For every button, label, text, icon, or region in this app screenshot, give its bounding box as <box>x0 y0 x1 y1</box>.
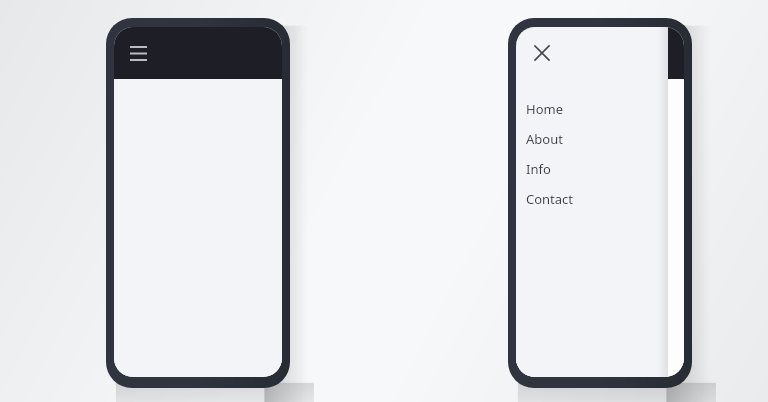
staticText: Home <box>526 100 563 118</box>
button[interactable]: Contact <box>516 184 668 214</box>
staticText: Contact <box>526 190 574 208</box>
button[interactable]: About <box>516 124 668 154</box>
button[interactable]: Close navigation menu <box>526 37 558 69</box>
button[interactable]: Info <box>516 154 668 184</box>
staticText: About <box>526 130 563 148</box>
staticText: Info <box>526 160 551 178</box>
button[interactable]: Home <box>516 94 668 124</box>
button[interactable]: Open navigation menu <box>122 37 154 69</box>
